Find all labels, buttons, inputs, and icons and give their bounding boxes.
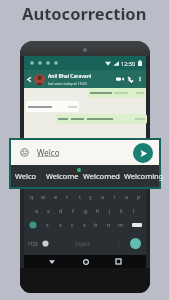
button[interactable]: a (31, 205, 42, 215)
staticText: q (30, 193, 34, 200)
staticText: last seen today at 10:53 (48, 81, 87, 86)
button[interactable]: i (109, 191, 120, 201)
button[interactable]: Backspace (128, 219, 145, 230)
button[interactable]: t (74, 191, 85, 201)
button[interactable]: ?123 (25, 237, 40, 250)
staticText: k (120, 207, 123, 214)
staticText: u (101, 193, 105, 200)
staticText: b (94, 221, 98, 228)
button[interactable]: Send (133, 143, 153, 163)
button[interactable]: h (92, 205, 103, 215)
staticText: l (133, 207, 135, 214)
staticText: p (137, 193, 141, 200)
staticText: Welcomed (83, 171, 120, 181)
staticText: e (54, 193, 58, 200)
staticText: Welco (37, 147, 60, 158)
button[interactable]: Welco (15, 165, 37, 187)
button[interactable]: English (51, 237, 115, 250)
button[interactable]: e (50, 191, 61, 201)
button[interactable]: o (121, 191, 132, 201)
button[interactable]: n (104, 219, 114, 230)
button[interactable]: v (79, 219, 89, 230)
staticText: r (66, 193, 69, 200)
staticText: Welco (15, 171, 37, 181)
button[interactable]: Emoji (40, 237, 51, 250)
button[interactable]: b (91, 219, 101, 230)
button[interactable]: u (97, 191, 108, 201)
button[interactable]: Home (79, 255, 92, 268)
button[interactable]: z (42, 219, 52, 230)
staticText: ?123 (28, 241, 38, 247)
staticText: z (46, 221, 49, 228)
button[interactable]: j (104, 205, 115, 215)
button[interactable]: k (116, 205, 127, 215)
staticText: j (109, 207, 111, 214)
staticText: Welcoming (124, 171, 164, 181)
button[interactable]: r (62, 191, 73, 201)
staticText: 12:30 (121, 60, 136, 67)
button[interactable]: m (116, 219, 126, 230)
staticText: f (72, 207, 74, 214)
button[interactable]: c (67, 219, 77, 230)
button[interactable]: g (80, 205, 91, 215)
staticText: h (96, 207, 100, 214)
staticText: m (118, 221, 124, 228)
staticText: y (89, 193, 92, 200)
button[interactable]: d (55, 205, 66, 215)
button[interactable]: s (43, 205, 54, 215)
button[interactable]: Shift (25, 219, 40, 230)
button[interactable]: w (38, 191, 49, 201)
staticText: w (41, 193, 46, 200)
button[interactable]: Recents (112, 255, 125, 268)
button[interactable]: x (55, 219, 65, 230)
button[interactable]: Back (45, 255, 58, 268)
staticText: s (47, 207, 50, 214)
button[interactable]: Welcome (46, 165, 79, 187)
button[interactable]: Welcoming (124, 165, 164, 187)
button[interactable]: y (85, 191, 96, 201)
button[interactable]: Welcomed (83, 165, 120, 187)
staticText: v (83, 221, 86, 228)
staticText: . (119, 240, 121, 248)
staticText: i (114, 193, 116, 200)
staticText: c (71, 221, 74, 228)
staticText: x (59, 221, 62, 228)
staticText: n (107, 221, 111, 228)
staticText: Autocorrection (22, 2, 147, 24)
staticText: t (79, 193, 81, 200)
button[interactable]: Enter (125, 237, 145, 250)
staticText: o (125, 193, 129, 200)
button[interactable]: f (67, 205, 78, 215)
staticText: d (59, 207, 63, 214)
button[interactable]: q (26, 191, 37, 201)
button[interactable]: l (128, 205, 139, 215)
button[interactable]: p (133, 191, 144, 201)
staticText: Anil Bhai Caravanl (48, 73, 92, 80)
staticText: a (35, 207, 39, 214)
staticText: Welcome (46, 171, 79, 181)
staticText: g (84, 207, 88, 214)
staticText: English (75, 241, 91, 247)
